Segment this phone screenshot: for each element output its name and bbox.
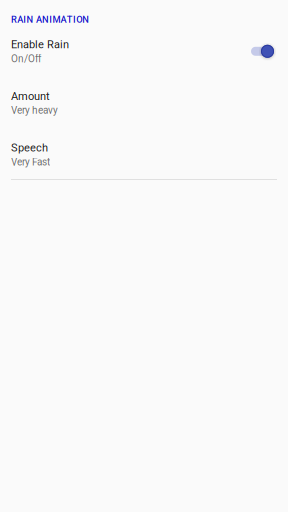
staticText: Very Fast — [11, 156, 50, 168]
staticText: Speech — [11, 141, 48, 154]
button[interactable]: Speech — [0, 116, 288, 168]
button[interactable]: Enable Rain — [0, 25, 288, 65]
staticText: Enable Rain — [11, 38, 69, 51]
staticText: RAIN ANIMATION — [11, 14, 89, 25]
staticText: Amount — [11, 90, 50, 103]
staticText: On/Off — [11, 53, 41, 65]
staticText: Very heavy — [11, 105, 58, 116]
button[interactable]: Amount — [0, 65, 288, 116]
